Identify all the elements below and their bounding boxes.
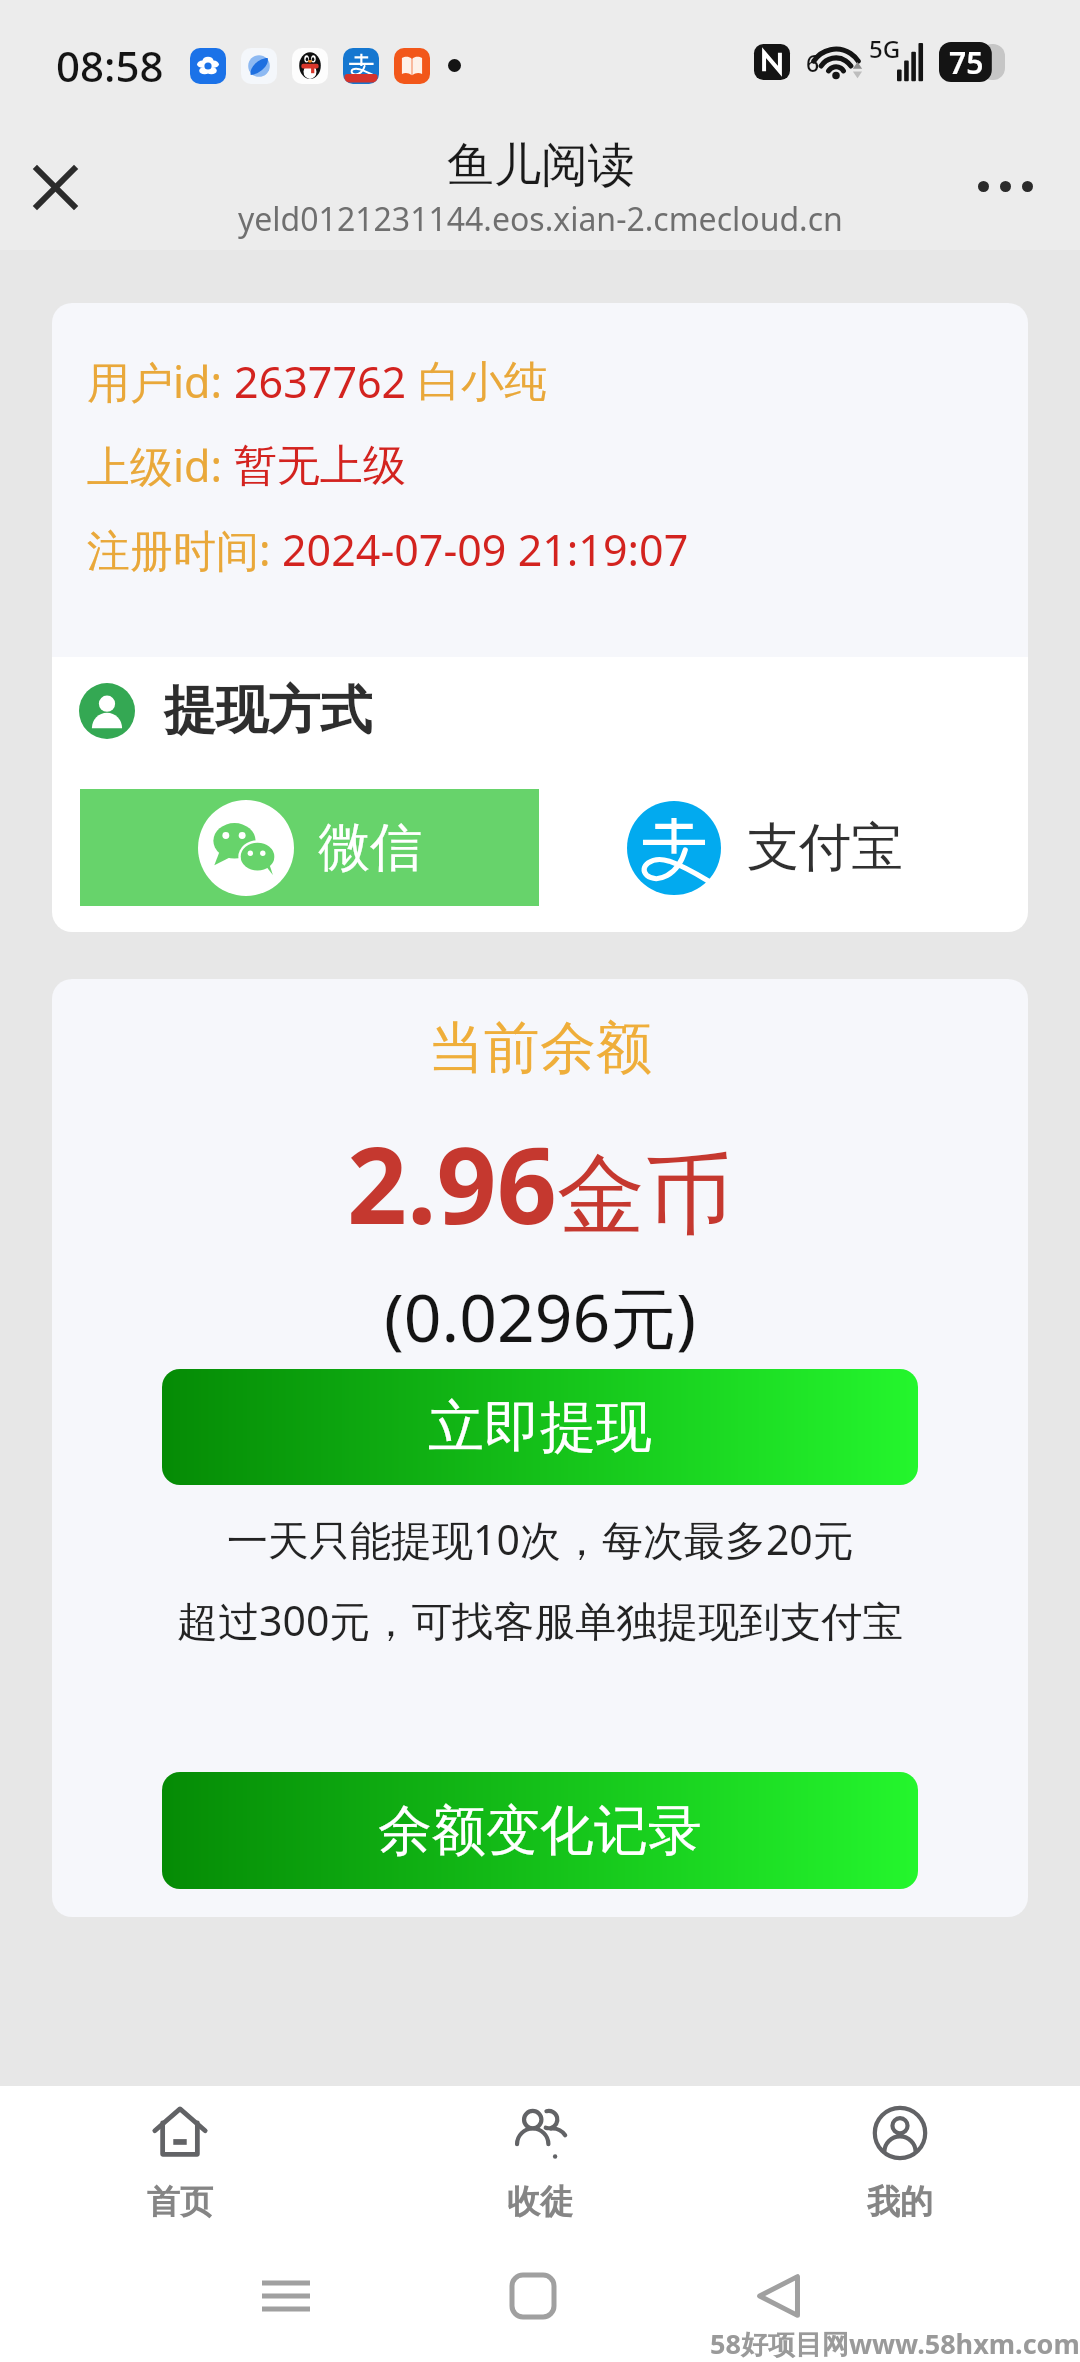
- staticText: 当前余额: [428, 1013, 652, 1084]
- staticText: (0.0296元): [384, 1271, 697, 1361]
- staticText: 2637762: [234, 352, 418, 411]
- staticText: 微信: [318, 815, 422, 881]
- button[interactable]: More options: [968, 171, 1043, 202]
- button[interactable]: 首页: [0, 2086, 360, 2241]
- button[interactable]: 立即提现: [162, 1369, 918, 1485]
- staticText: 立即提现: [428, 1392, 652, 1463]
- staticText: 暂无上级: [234, 439, 406, 493]
- button[interactable]: 支付宝: [627, 789, 903, 906]
- staticText: 58好项目网www.58hxm.com: [710, 2325, 1080, 2362]
- staticText: 用户id:: [87, 352, 234, 411]
- staticText: 首页: [147, 2181, 213, 2223]
- staticText: yeld0121231144.eos.xian-2.cmecloud.cn: [238, 197, 843, 241]
- staticText: 我的: [867, 2181, 933, 2223]
- button[interactable]: 余额变化记录: [162, 1772, 918, 1889]
- staticText: 金币: [557, 1140, 733, 1251]
- button[interactable]: 收徒: [360, 2086, 720, 2241]
- staticText: 支付宝: [747, 815, 903, 881]
- staticText: 提现方式: [164, 678, 372, 744]
- staticText: 5G: [869, 32, 901, 65]
- staticText: 白小纯: [418, 355, 547, 409]
- staticText: 上级id:: [87, 436, 234, 495]
- button[interactable]: 我的: [720, 2086, 1080, 2241]
- staticText: 鱼儿阅读: [447, 136, 635, 195]
- button[interactable]: Recent apps: [221, 2266, 351, 2326]
- staticText: 一天只能提现10次，每次最多20元: [227, 1511, 854, 1567]
- staticText: 2024-07-09 21:19:07: [282, 520, 689, 579]
- button[interactable]: Close: [19, 151, 91, 223]
- staticText: 收徒: [507, 2181, 573, 2223]
- staticText: 余额变化记录: [378, 1797, 702, 1865]
- staticText: 2.96: [347, 1112, 557, 1255]
- button[interactable]: Home: [468, 2266, 598, 2326]
- staticText: 08:58: [56, 37, 164, 94]
- button[interactable]: Back: [714, 2266, 844, 2326]
- staticText: 75: [949, 42, 984, 82]
- staticText: 注册时间:: [87, 520, 282, 579]
- button[interactable]: 微信: [80, 789, 539, 906]
- staticText: 6: [806, 47, 820, 78]
- staticText: 超过300元，可找客服单独提现到支付宝: [177, 1592, 904, 1648]
